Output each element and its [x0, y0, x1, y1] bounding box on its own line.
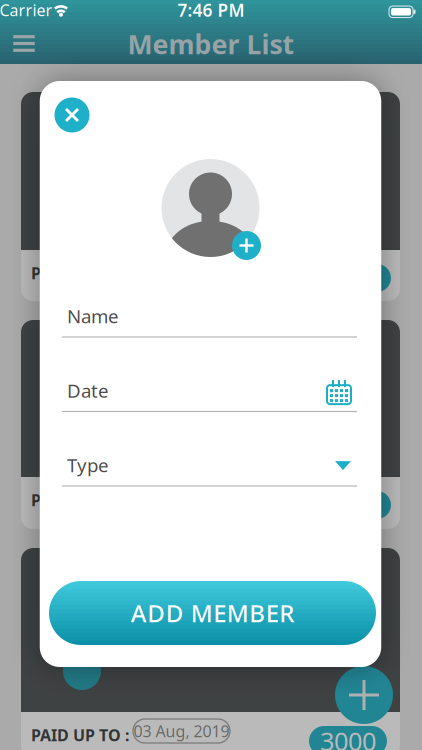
button[interactable]: Close — [54, 97, 89, 132]
staticText: 03 Aug, 2019 — [133, 720, 229, 742]
staticText: 03 Aug, 2019 — [133, 485, 229, 507]
button[interactable]: Date — [62, 363, 357, 412]
staticText: Member List — [127, 26, 294, 62]
staticText: PAID UP TO : — [31, 724, 129, 746]
staticText: Carrier — [0, 0, 52, 21]
staticText: Name — [67, 304, 119, 328]
staticText: 3000 — [320, 724, 376, 750]
staticText: PAID UP TO : — [31, 262, 129, 284]
staticText: ADD MEMBER — [131, 597, 294, 629]
staticText: 7:46 PM — [177, 0, 244, 21]
staticText: PAID UP TO : — [31, 489, 129, 511]
staticText: Date — [67, 378, 109, 403]
button[interactable]: Add photo — [232, 231, 261, 260]
button[interactable]: Add member — [335, 666, 393, 724]
button[interactable]: Type — [62, 438, 357, 487]
button[interactable]: Menu — [6, 28, 42, 58]
button[interactable]: ADD MEMBER — [49, 581, 376, 645]
staticText: Type — [67, 453, 109, 477]
button[interactable]: Name — [62, 289, 357, 338]
